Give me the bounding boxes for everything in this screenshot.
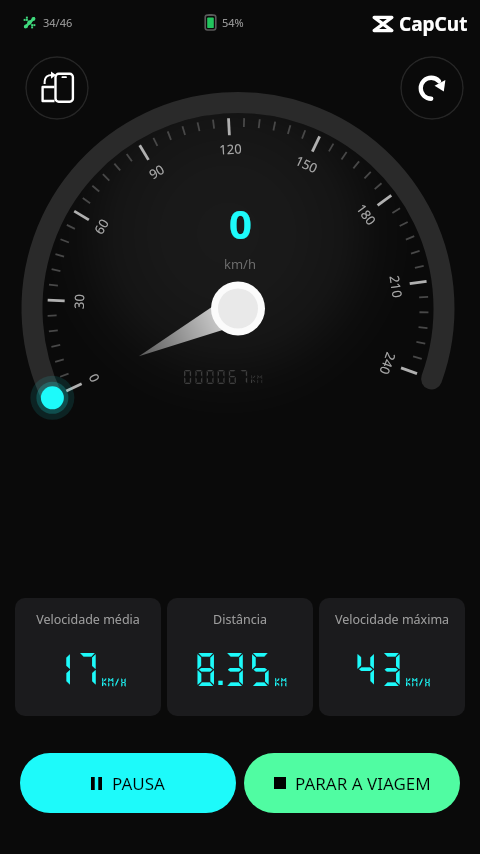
button[interactable]: PARAR A VIAGEM bbox=[244, 753, 460, 813]
button[interactable]: Velocidade máxima bbox=[319, 598, 465, 716]
staticText: 17 bbox=[49, 648, 101, 689]
staticText: KM/H bbox=[405, 677, 431, 687]
button[interactable]: Rotate screen bbox=[25, 56, 89, 120]
staticText: 000067 bbox=[182, 367, 250, 385]
staticText: 0 bbox=[229, 196, 252, 250]
staticText: Distância bbox=[167, 611, 313, 628]
staticText: 8.35 bbox=[193, 648, 274, 689]
button[interactable]: Velocidade média bbox=[15, 598, 161, 716]
staticText: 54% bbox=[222, 15, 244, 30]
staticText: CapCut bbox=[399, 11, 468, 37]
staticText: 150 bbox=[292, 151, 321, 177]
staticText: PARAR A VIAGEM bbox=[295, 772, 431, 795]
staticText: KM bbox=[250, 374, 263, 384]
staticText: 0 bbox=[84, 370, 104, 385]
staticText: 34/46 bbox=[43, 15, 73, 30]
staticText: PAUSA bbox=[112, 772, 165, 795]
staticText: 180 bbox=[352, 200, 380, 229]
staticText: Velocidade média bbox=[15, 611, 161, 628]
staticText: 30 bbox=[70, 294, 88, 309]
staticText: 43 bbox=[353, 648, 405, 689]
staticText: km/h bbox=[224, 255, 256, 273]
staticText: 60 bbox=[90, 215, 113, 238]
button[interactable]: PAUSA bbox=[20, 753, 236, 813]
staticText: Velocidade máxima bbox=[319, 611, 465, 628]
staticText: 120 bbox=[219, 139, 242, 158]
button[interactable]: Distância bbox=[167, 598, 313, 716]
staticText: KM/H bbox=[101, 677, 127, 687]
staticText: KM bbox=[274, 677, 287, 687]
staticText: 210 bbox=[385, 274, 407, 299]
staticText: 240 bbox=[375, 350, 400, 377]
staticText: 90 bbox=[145, 160, 167, 183]
button[interactable]: Reset trip bbox=[400, 56, 464, 120]
